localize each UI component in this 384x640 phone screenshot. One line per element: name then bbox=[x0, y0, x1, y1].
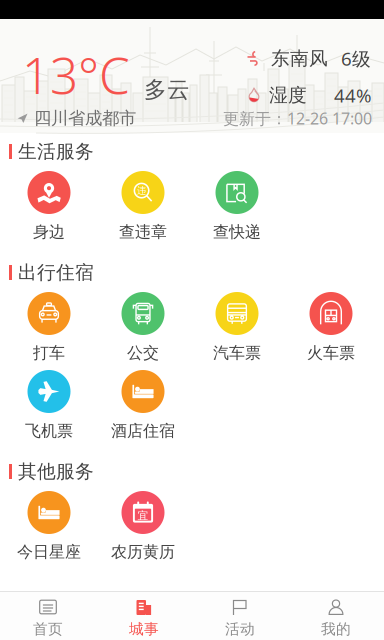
staticText: 查违章 bbox=[119, 222, 167, 242]
staticText: 查快递 bbox=[213, 222, 261, 242]
button[interactable]: 身边 bbox=[2, 170, 96, 248]
staticText: 酒店住宿 bbox=[111, 421, 175, 441]
button[interactable]: 活动 bbox=[192, 592, 288, 640]
staticText: 四川省成都市 bbox=[34, 108, 136, 129]
button[interactable]: 汽车票 bbox=[190, 291, 284, 369]
button[interactable]: 公交 bbox=[96, 291, 190, 369]
staticText: 多云 bbox=[144, 76, 190, 103]
staticText: 湿度 bbox=[269, 84, 307, 107]
staticText: 东南风 bbox=[271, 47, 328, 70]
button[interactable]: 查快递 bbox=[190, 170, 284, 248]
staticText: 身边 bbox=[33, 222, 65, 242]
staticText: 今日星座 bbox=[17, 542, 81, 562]
button[interactable]: 酒店住宿 bbox=[96, 369, 190, 447]
staticText: 13°C bbox=[22, 42, 130, 108]
staticText: 汽车票 bbox=[213, 343, 261, 363]
button[interactable]: 今日星座 bbox=[2, 490, 96, 568]
button[interactable]: 火车票 bbox=[284, 291, 378, 369]
staticText: 火车票 bbox=[307, 343, 355, 363]
staticText: 首页 bbox=[33, 620, 63, 638]
staticText: 其他服务 bbox=[18, 460, 94, 483]
button[interactable]: 飞机票 bbox=[2, 369, 96, 447]
staticText: 我的 bbox=[321, 620, 351, 638]
staticText: 更新于：12-26 17:00 bbox=[223, 108, 372, 129]
staticText: 违 bbox=[137, 185, 146, 196]
staticText: 生活服务 bbox=[18, 140, 94, 163]
button[interactable]: 城事 bbox=[96, 592, 192, 640]
staticText: 44% bbox=[334, 83, 372, 108]
staticText: 飞机票 bbox=[25, 421, 73, 441]
button[interactable]: 首页 bbox=[0, 592, 96, 640]
staticText: 活动 bbox=[225, 620, 255, 638]
button[interactable]: 打车 bbox=[2, 291, 96, 369]
staticText: 公交 bbox=[127, 343, 159, 363]
button[interactable]: 宜 bbox=[96, 490, 190, 568]
staticText: 农历黄历 bbox=[111, 542, 175, 562]
staticText: 6级 bbox=[341, 46, 371, 71]
button[interactable]: 违 bbox=[96, 170, 190, 248]
staticText: 出行住宿 bbox=[18, 261, 94, 284]
staticText: 城事 bbox=[129, 620, 159, 638]
staticText: 打车 bbox=[33, 343, 65, 363]
button[interactable]: 我的 bbox=[288, 592, 384, 640]
staticText: 宜 bbox=[137, 509, 148, 522]
